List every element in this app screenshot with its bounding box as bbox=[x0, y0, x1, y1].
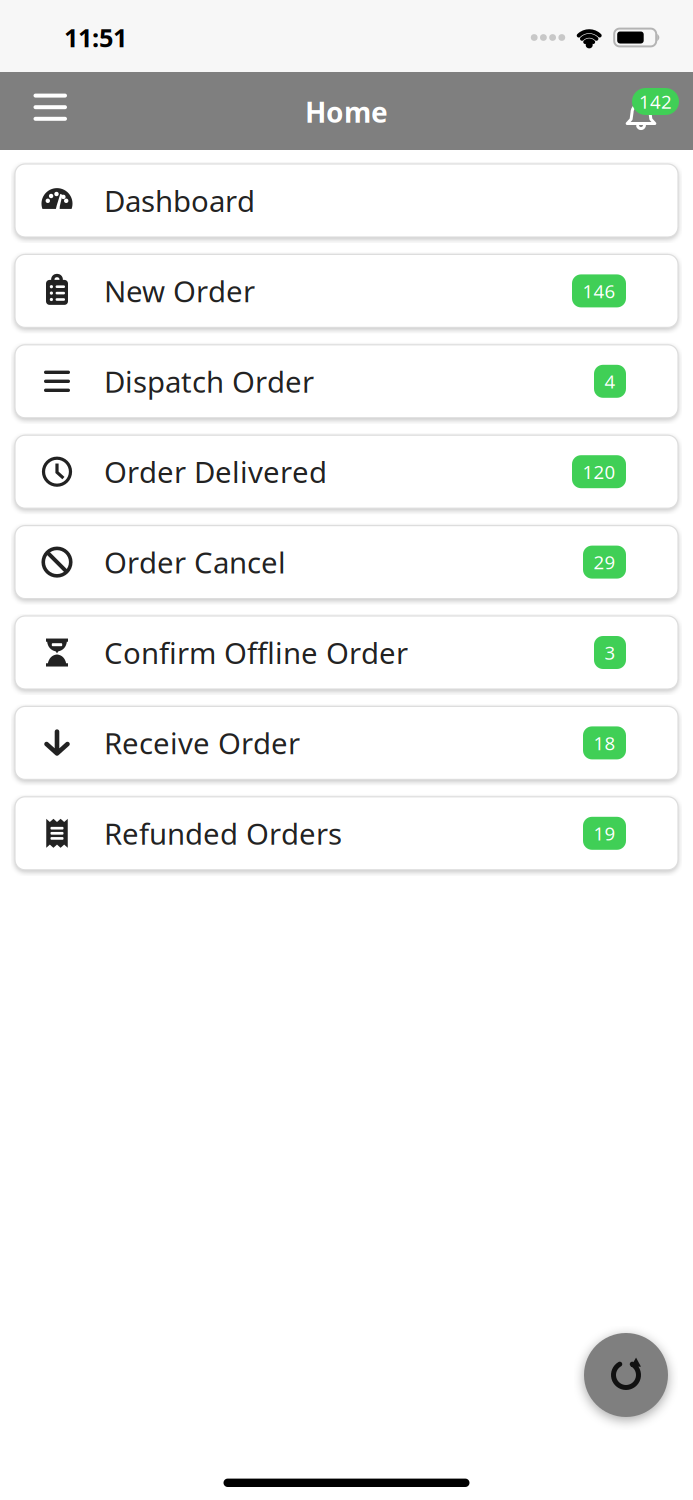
staticText: Dispatch Order bbox=[104, 362, 314, 401]
button[interactable]: Notifications bbox=[603, 81, 679, 141]
staticText: 120 bbox=[582, 459, 615, 484]
staticText: Order Cancel bbox=[104, 543, 286, 582]
staticText: Home bbox=[305, 93, 388, 131]
button[interactable]: Order Delivered bbox=[15, 435, 678, 508]
staticText: 4 bbox=[604, 369, 615, 394]
staticText: 11:51 bbox=[64, 20, 127, 55]
button[interactable]: Dashboard bbox=[15, 164, 678, 237]
button[interactable]: Refunded Orders bbox=[15, 797, 678, 870]
staticText: Receive Order bbox=[104, 723, 300, 762]
button[interactable]: Receive Order bbox=[15, 706, 678, 779]
staticText: 19 bbox=[593, 821, 615, 846]
button[interactable]: Menu bbox=[0, 84, 67, 131]
staticText: 3 bbox=[604, 640, 615, 665]
staticText: Confirm Offline Order bbox=[104, 633, 408, 672]
button[interactable]: Dispatch Order bbox=[15, 345, 678, 418]
staticText: Refunded Orders bbox=[104, 814, 342, 853]
button[interactable]: New Order bbox=[15, 254, 678, 327]
staticText: 18 bbox=[593, 730, 615, 755]
staticText: 29 bbox=[593, 550, 615, 574]
staticText: Order Delivered bbox=[104, 452, 327, 491]
button[interactable]: Confirm Offline Order bbox=[15, 616, 678, 689]
staticText: Dashboard bbox=[104, 181, 255, 220]
button[interactable]: Order Cancel bbox=[15, 526, 678, 599]
staticText: 142 bbox=[639, 89, 672, 114]
staticText: New Order bbox=[104, 271, 255, 310]
button[interactable]: Refresh bbox=[584, 1333, 668, 1417]
staticText: 146 bbox=[582, 278, 615, 303]
